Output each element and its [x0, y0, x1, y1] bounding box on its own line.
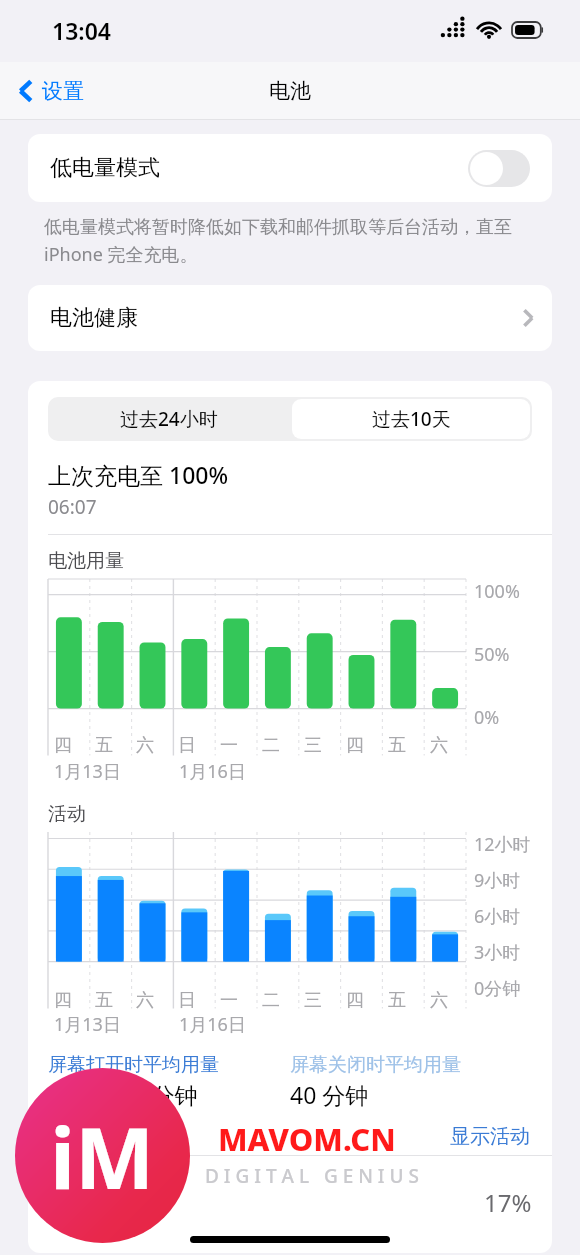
staticText: 06:07	[48, 494, 97, 520]
staticText: 四	[54, 734, 72, 757]
staticText: 1月13日	[54, 1012, 121, 1037]
staticText: 100%	[474, 579, 520, 604]
staticText: 13:04	[52, 15, 111, 46]
staticText: MAVOM.CN	[218, 1118, 396, 1160]
button[interactable]: 过去24小时	[48, 397, 290, 441]
staticText: 五	[95, 989, 113, 1012]
staticText: 五	[388, 734, 406, 757]
button[interactable]: 过去10天	[292, 399, 530, 439]
staticText: D I G I T A L G E N I U S	[205, 1163, 419, 1189]
staticText: 低电量模式	[50, 154, 160, 182]
staticText: 3小时	[474, 940, 521, 965]
staticText: 低电量模式将暂时降低如下载和邮件抓取等后台活动，直至 iPhone 完全充电。	[44, 214, 542, 267]
staticText: 四	[346, 734, 364, 757]
staticText: 40 分钟	[290, 1079, 369, 1110]
staticText: 1月13日	[54, 759, 121, 784]
staticText: 12小时	[474, 832, 531, 857]
staticText: 设置	[42, 78, 84, 104]
staticText: 过去24小时	[120, 406, 218, 432]
staticText: 上次充电至 100%	[48, 459, 229, 490]
button[interactable]: 电池健康	[28, 285, 552, 351]
staticText: 50%	[474, 642, 510, 667]
staticText: 三	[304, 734, 322, 757]
staticText: 三	[304, 989, 322, 1012]
staticText: iM	[50, 1099, 155, 1213]
staticText: 二	[262, 734, 280, 757]
staticText: 四	[54, 989, 72, 1012]
staticText: 一	[220, 734, 238, 757]
staticText: 一	[220, 989, 238, 1012]
staticText: 屏幕关闭时平均用量	[290, 1053, 461, 1077]
staticText: 六	[136, 734, 154, 757]
button[interactable]: 低电量模式开关	[468, 150, 530, 187]
staticText: 电池健康	[50, 304, 138, 332]
staticText: 电池	[269, 78, 311, 104]
staticText: 17%	[484, 1186, 532, 1219]
button[interactable]: 低电量模式	[28, 134, 552, 202]
staticText: 6小时	[474, 904, 521, 929]
staticText: 五	[95, 734, 113, 757]
staticText: 六	[430, 734, 448, 757]
staticText: 四	[346, 989, 364, 1012]
button[interactable]: 显示活动	[28, 1124, 552, 1155]
staticText: 屏幕打开时平均用量	[48, 1053, 219, 1077]
staticText: 五	[388, 989, 406, 1012]
staticText: 活动	[48, 802, 86, 826]
staticText: 显示活动	[450, 1124, 530, 1149]
staticText: 9小时	[474, 868, 521, 893]
staticText: 电池用量	[48, 549, 124, 573]
staticText: 六	[430, 989, 448, 1012]
button[interactable]: 设置	[14, 74, 88, 108]
staticText: 六	[136, 989, 154, 1012]
staticText: 1月16日	[179, 759, 246, 784]
staticText: 日	[178, 734, 196, 757]
staticText: 二	[262, 989, 280, 1012]
staticText: 日	[178, 989, 196, 1012]
staticText: 过去10天	[372, 406, 451, 432]
staticText: 1 小时 56 分钟	[48, 1079, 198, 1110]
staticText: 0分钟	[474, 976, 521, 1001]
staticText: 1月16日	[179, 1012, 246, 1037]
staticText: 0%	[474, 705, 500, 730]
